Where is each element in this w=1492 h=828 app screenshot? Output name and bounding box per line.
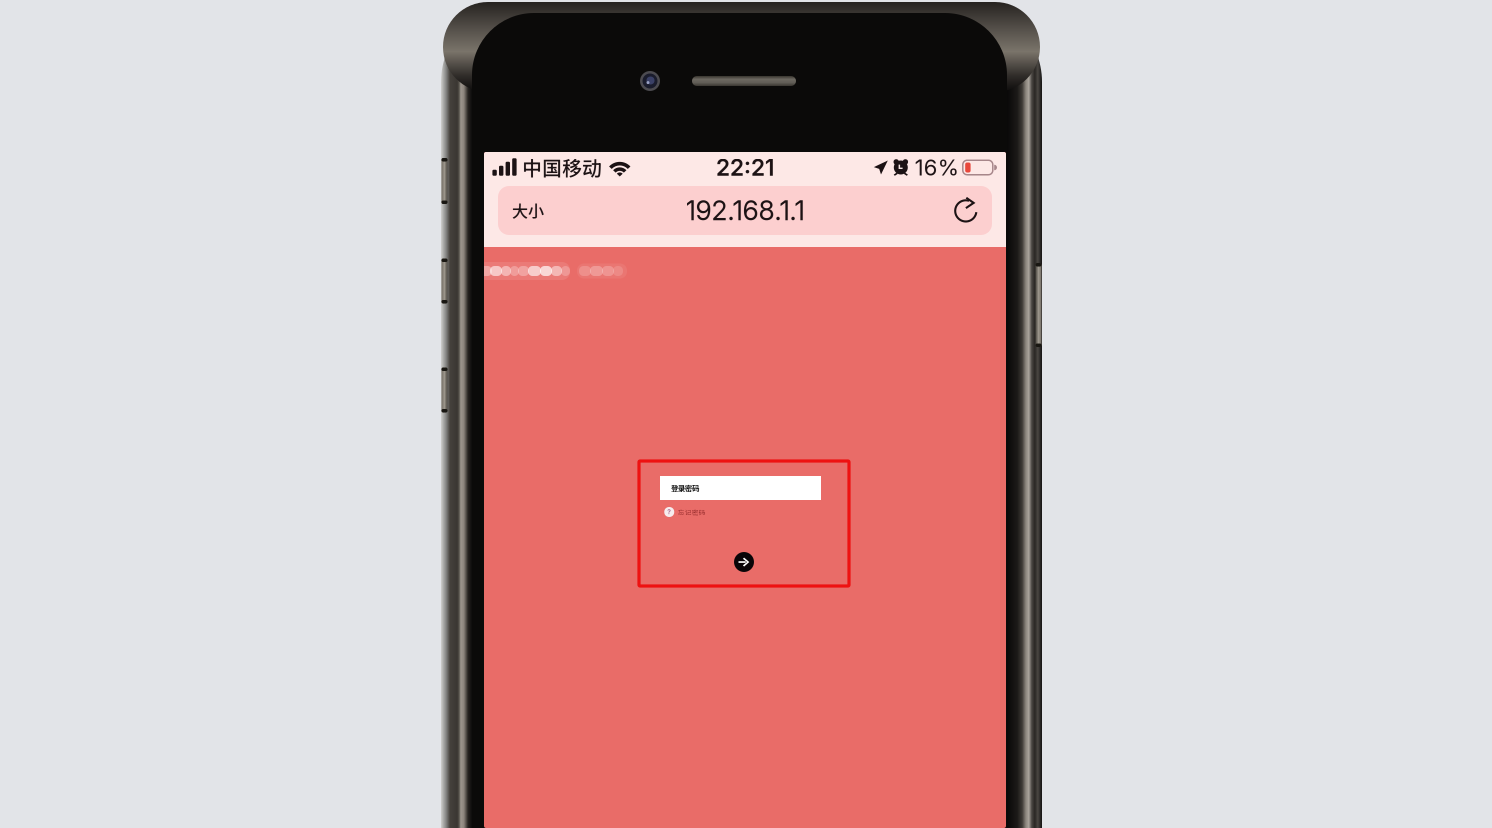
staticText: 登录密码 — [671, 483, 699, 493]
staticText: 22:21 — [716, 154, 774, 181]
staticText: 忘记密码 — [678, 507, 706, 517]
staticText: 16% — [915, 154, 959, 181]
button[interactable]: 大小 — [498, 186, 558, 235]
staticText: ? — [667, 508, 671, 516]
button[interactable]: Submit — [731, 549, 757, 575]
button[interactable]: ? — [664, 506, 706, 518]
button[interactable]: Reload page — [940, 186, 992, 235]
staticText: 中国移动 — [522, 153, 602, 181]
staticText: 192.168.1.1 — [685, 194, 804, 227]
staticText: 大小 — [512, 199, 544, 222]
